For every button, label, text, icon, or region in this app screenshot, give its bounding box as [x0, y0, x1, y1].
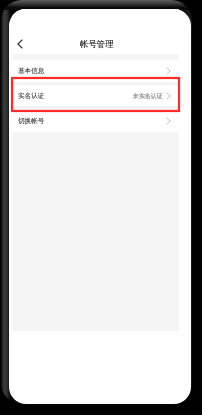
button[interactable]: 基本信息 — [12, 60, 179, 82]
staticText: 帐号管理 — [80, 39, 114, 50]
staticText: 切换帐号 — [18, 117, 45, 125]
staticText: 未实名认证 — [133, 92, 163, 99]
button[interactable]: 实名认证 — [12, 85, 179, 106]
button[interactable]: 切换帐号 — [12, 110, 179, 132]
button[interactable]: Back — [12, 36, 27, 51]
staticText: 切换帐号 — [18, 117, 45, 125]
staticText: 未实名认证 — [133, 92, 163, 99]
staticText: 帐号管理 — [80, 39, 114, 50]
staticText: 实名认证 — [18, 92, 45, 100]
staticText: 基本信息 — [18, 67, 45, 75]
staticText: 基本信息 — [18, 67, 45, 75]
staticText: 实名认证 — [18, 92, 45, 100]
